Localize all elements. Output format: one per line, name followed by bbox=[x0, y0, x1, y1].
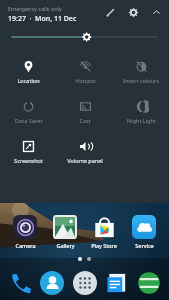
staticText: Volume panel bbox=[67, 157, 103, 164]
staticText: Screenshot bbox=[14, 157, 43, 164]
button[interactable]: Brightness bbox=[0, 24, 169, 50]
staticText: Service bbox=[135, 242, 154, 249]
staticText: Invert colours bbox=[123, 77, 159, 84]
button[interactable]: Invert colours bbox=[113, 52, 169, 92]
button[interactable]: Volume panel bbox=[57, 132, 113, 172]
button[interactable]: Phone bbox=[5, 268, 35, 298]
button[interactable]: Camera bbox=[6, 213, 44, 249]
staticText: Location bbox=[17, 77, 40, 84]
button[interactable]: Location bbox=[0, 52, 57, 92]
button[interactable]: Hotspot bbox=[57, 52, 113, 92]
staticText: Hotspot bbox=[75, 77, 96, 84]
button[interactable]: Cast bbox=[57, 92, 113, 132]
button[interactable]: All apps bbox=[70, 268, 100, 298]
button[interactable]: Gallery bbox=[46, 213, 84, 249]
button[interactable]: Settings bbox=[126, 5, 140, 19]
button[interactable]: Night Light bbox=[113, 92, 169, 132]
staticText: Gallery bbox=[56, 242, 75, 249]
button[interactable]: Edit bbox=[103, 5, 117, 19]
staticText: Camera bbox=[15, 242, 36, 249]
staticText: 19:27 · Mon, 11 Dec bbox=[8, 14, 77, 24]
button[interactable]: Play Store bbox=[85, 213, 123, 249]
staticText: Play Store bbox=[91, 242, 117, 249]
staticText: Emergency calls only bbox=[8, 5, 62, 12]
button[interactable]: Contacts bbox=[37, 268, 67, 298]
button[interactable]: Service bbox=[125, 213, 163, 249]
button[interactable]: Messages bbox=[102, 268, 132, 298]
button[interactable]: Data Saver bbox=[0, 92, 57, 132]
button[interactable]: Collapse bbox=[149, 5, 163, 19]
button[interactable]: Screenshot bbox=[0, 132, 57, 172]
staticText: Cast bbox=[79, 117, 91, 124]
staticText: Data Saver bbox=[15, 117, 43, 124]
button[interactable]: Browser bbox=[134, 268, 164, 298]
staticText: Night Light bbox=[127, 117, 156, 124]
